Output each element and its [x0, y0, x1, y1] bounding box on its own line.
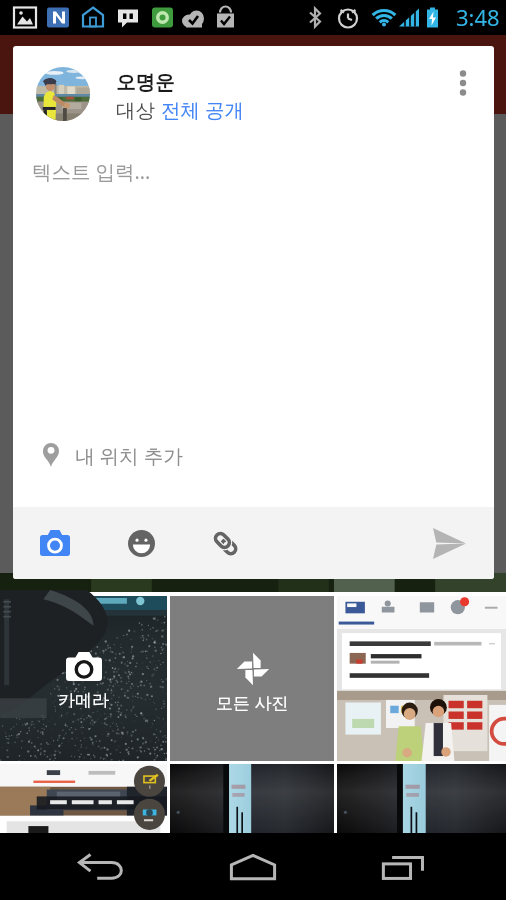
- button[interactable]: Recent apps: [355, 839, 455, 894]
- staticText: 대상: [116, 96, 161, 123]
- staticText: 오명운: [116, 70, 175, 95]
- button[interactable]: 오명운: [13, 46, 494, 142]
- staticText: 텍스트 입력...: [32, 158, 151, 185]
- button[interactable]: Home: [203, 839, 303, 894]
- staticText: 3:48: [456, 2, 500, 32]
- staticText: 내 위치 추가: [75, 442, 183, 469]
- staticText: 모든 사진: [216, 691, 289, 714]
- button[interactable]: Send: [418, 512, 480, 574]
- button[interactable]: Back: [52, 839, 152, 894]
- button[interactable]: [170, 764, 334, 833]
- button[interactable]: 내 위치 추가: [13, 403, 494, 507]
- button[interactable]: [337, 596, 506, 761]
- button[interactable]: 텍스트 입력...: [13, 142, 494, 507]
- button[interactable]: More options: [432, 46, 494, 142]
- button[interactable]: [337, 764, 506, 833]
- staticText: 전체 공개: [161, 96, 245, 123]
- staticText: 카메라: [58, 690, 109, 711]
- button[interactable]: 모든 사진: [170, 596, 334, 761]
- button[interactable]: Attach link: [197, 515, 253, 571]
- button[interactable]: Camera: [27, 515, 83, 571]
- button[interactable]: Camera: [0, 596, 167, 761]
- button[interactable]: Emoji: [113, 515, 169, 571]
- button[interactable]: [0, 764, 167, 833]
